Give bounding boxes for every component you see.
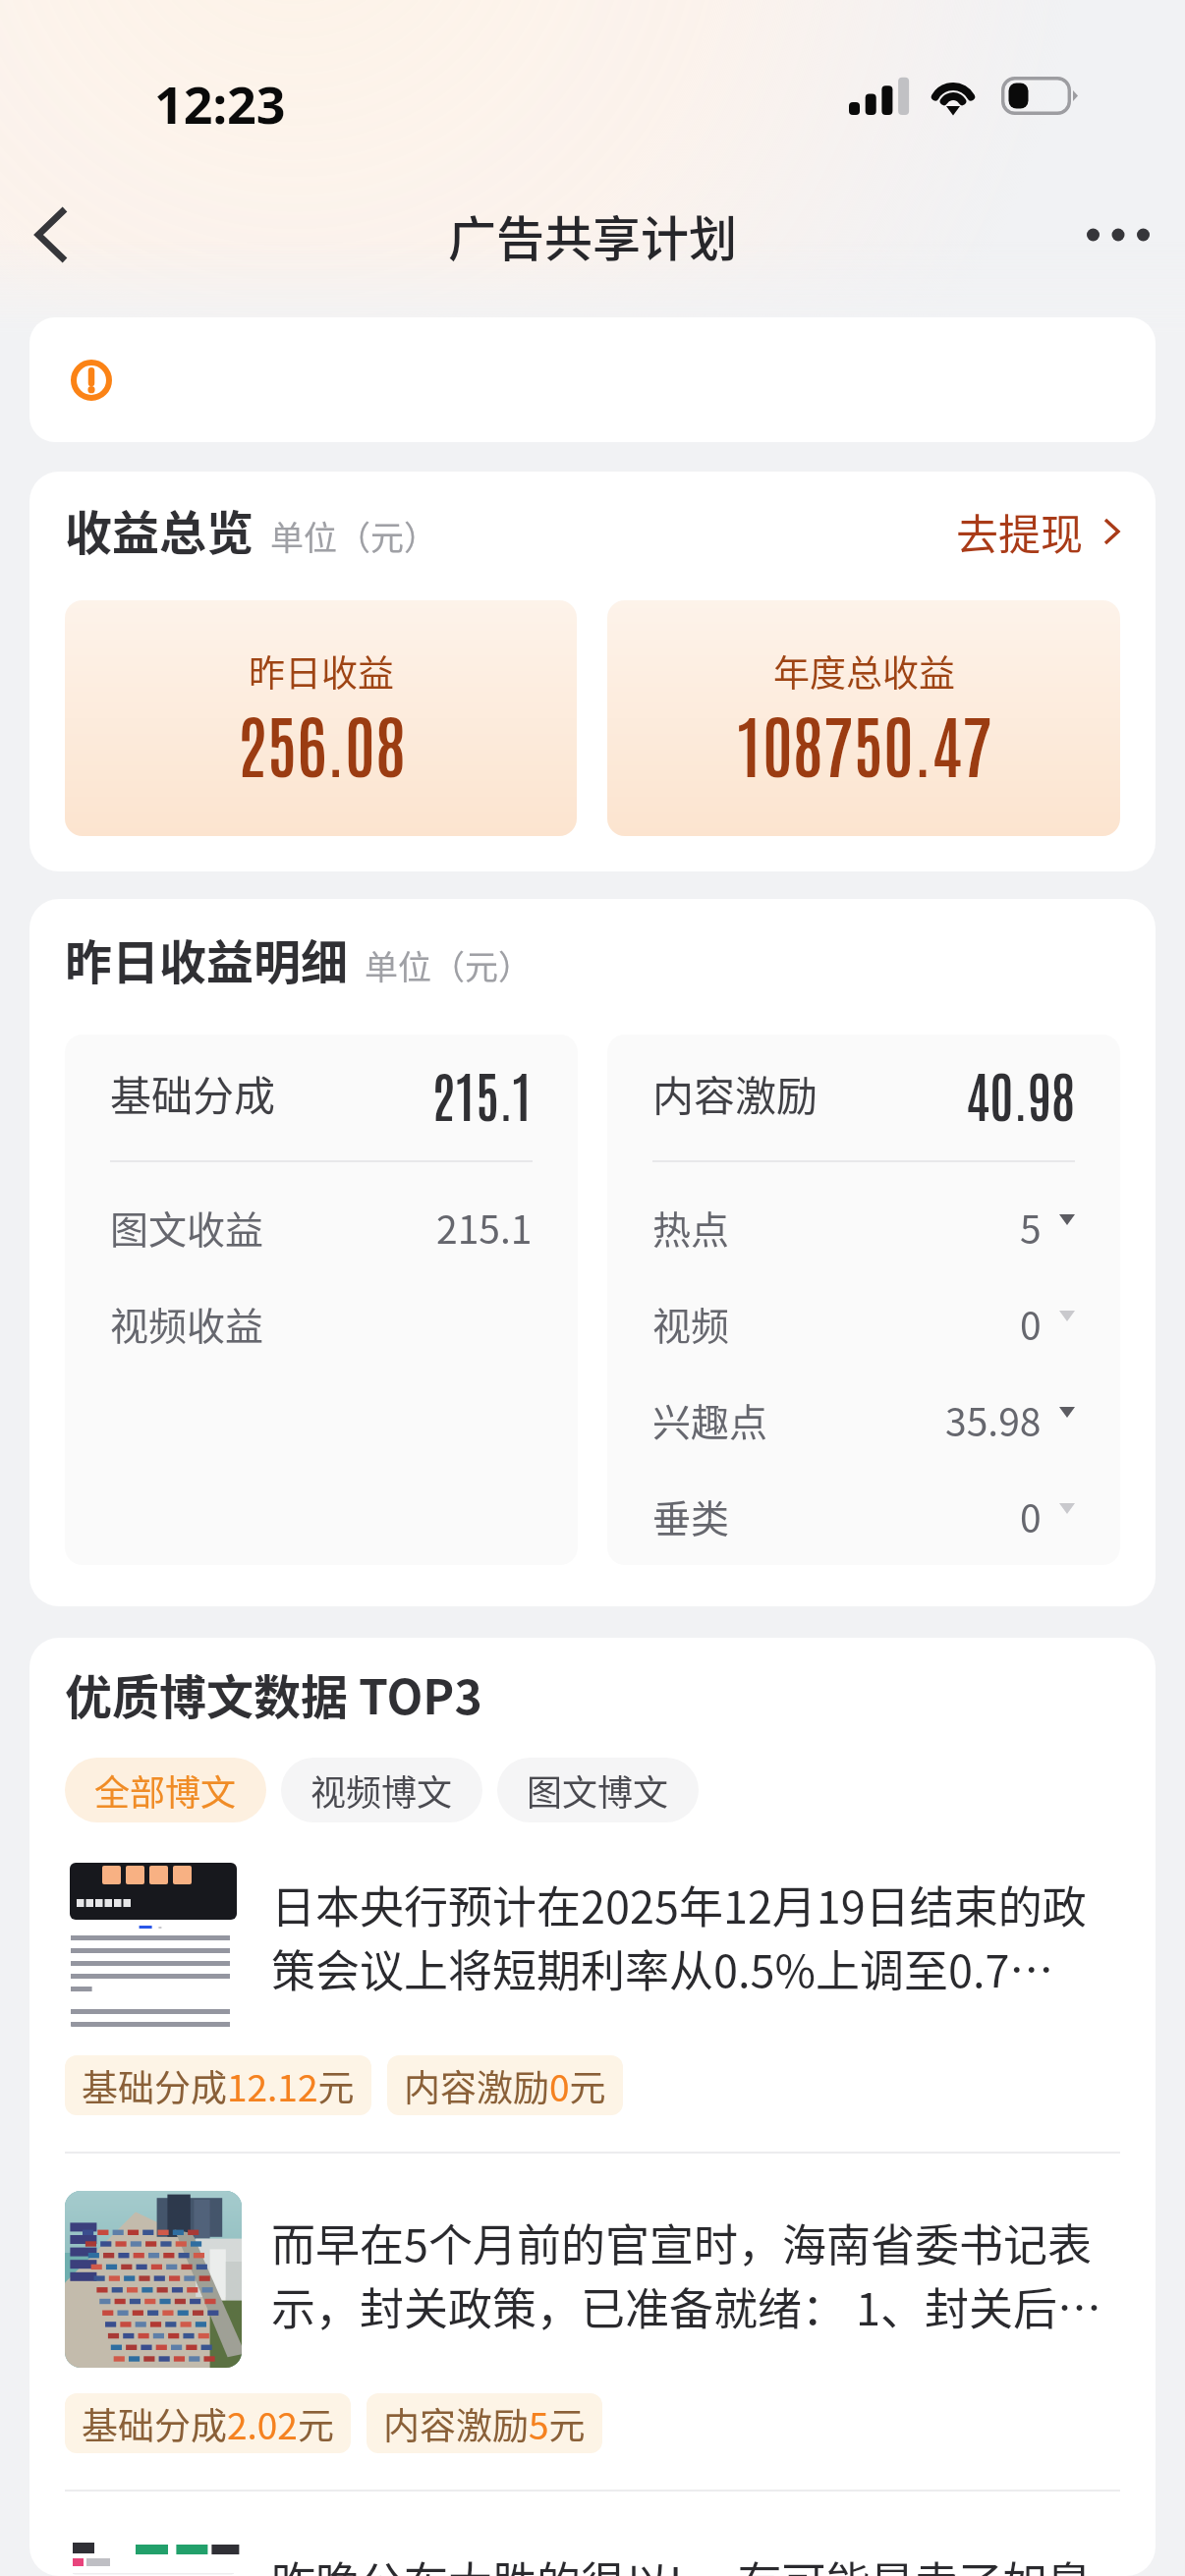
button[interactable]: Notice: [29, 317, 1156, 442]
staticText: 日本央行预计在2025年12月19日结束的政策会议上将短期利率从0.5%上调至0…: [271, 1873, 1120, 2000]
button[interactable]: 视频博文: [281, 1758, 482, 1822]
button[interactable]: 日本央行预计在2025年12月19日结束的政策会议上将短期利率从0.5%上调至0…: [65, 1822, 1120, 2152]
staticText: 108750.47: [736, 698, 992, 787]
staticText: 年度总收益: [773, 644, 955, 698]
staticText: 0: [1020, 1296, 1042, 1351]
button[interactable]: 去提现: [956, 501, 1120, 564]
staticText: 全部博文: [94, 1764, 237, 1816]
staticText: 昨日收益明细: [65, 924, 349, 993]
staticText: 兴趣点: [652, 1392, 768, 1447]
staticText: 收益总览: [65, 495, 254, 564]
staticText: 而早在5个月前的官宣时，海南省委书记表示，封关政策，已准备就绪： 1、封关后…: [271, 2211, 1120, 2338]
staticText: 视频收益: [110, 1296, 264, 1351]
staticText: 垂类: [652, 1488, 730, 1543]
staticText: 单位（元）: [365, 941, 532, 989]
button[interactable]: 年度总收益: [607, 600, 1120, 836]
staticText: 去提现: [956, 501, 1083, 562]
staticText: 视频: [652, 1296, 730, 1351]
staticText: 基础分成: [110, 1063, 276, 1123]
button[interactable]: Back: [14, 187, 88, 283]
button[interactable]: 图文博文: [497, 1758, 699, 1822]
button[interactable]: More options: [1067, 187, 1169, 283]
button[interactable]: 而早在5个月前的官宣时，海南省委书记表示，封关政策，已准备就绪： 1、封关后…: [65, 2154, 1120, 2490]
button[interactable]: 内容激励0元: [387, 2055, 623, 2115]
staticText: 热点: [652, 1200, 730, 1255]
staticText: 256.08: [237, 698, 406, 787]
staticText: 内容激励5元: [383, 2397, 586, 2450]
staticText: 视频博文: [310, 1764, 453, 1816]
staticText: 基础分成12.12元: [82, 2059, 355, 2112]
button[interactable]: 昨晚公布大胜的很以L，有可能是卖了如皋超出: [65, 2492, 1120, 2576]
button[interactable]: 基础分成12.12元: [65, 2055, 371, 2115]
staticText: 0: [1020, 1488, 1042, 1543]
staticText: 215.1: [431, 1058, 533, 1128]
staticText: 图文博文: [527, 1764, 669, 1816]
staticText: 12:23: [154, 69, 286, 139]
staticText: 昨晚公布大胜的很以L，有可能是卖了如皋超出: [271, 2548, 1120, 2576]
staticText: 215.1: [436, 1200, 533, 1255]
staticText: 昨日收益: [249, 644, 394, 698]
staticText: 广告共享计划: [448, 200, 738, 270]
staticText: 内容激励: [652, 1063, 818, 1123]
staticText: 35.98: [945, 1392, 1042, 1447]
button[interactable]: 全部博文: [65, 1758, 266, 1822]
staticText: 内容激励0元: [404, 2059, 606, 2112]
staticText: 5: [1020, 1200, 1042, 1255]
button[interactable]: 昨日收益: [65, 600, 577, 836]
staticText: 图文收益: [110, 1200, 264, 1255]
staticText: 40.98: [966, 1058, 1075, 1128]
staticText: 优质博文数据 TOP3: [65, 1659, 482, 1728]
staticText: 基础分成2.02元: [82, 2397, 334, 2450]
staticText: 单位（元）: [270, 512, 437, 560]
button[interactable]: 内容激励5元: [367, 2393, 602, 2453]
button[interactable]: 基础分成2.02元: [65, 2393, 351, 2453]
other: Notice: [71, 360, 112, 401]
